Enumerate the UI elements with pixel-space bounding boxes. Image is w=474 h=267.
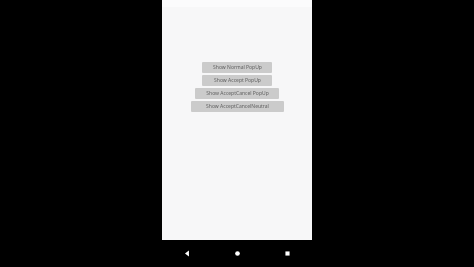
staticText: Show AcceptCancel PopUp <box>206 90 269 97</box>
staticText: Show AcceptCancelNeutral <box>206 103 269 110</box>
button[interactable]: Show Normal PopUp <box>202 62 272 73</box>
button[interactable]: Home <box>212 240 262 267</box>
staticText: Show Accept PopUp <box>214 77 261 84</box>
staticText: Show Normal PopUp <box>213 64 262 71</box>
button[interactable]: Show Accept PopUp <box>202 75 272 86</box>
button[interactable]: Recent apps <box>262 240 312 267</box>
button[interactable]: Show AcceptCancel PopUp <box>195 88 279 99</box>
button[interactable]: Show AcceptCancelNeutral <box>191 101 284 112</box>
button[interactable]: Back <box>162 240 212 267</box>
